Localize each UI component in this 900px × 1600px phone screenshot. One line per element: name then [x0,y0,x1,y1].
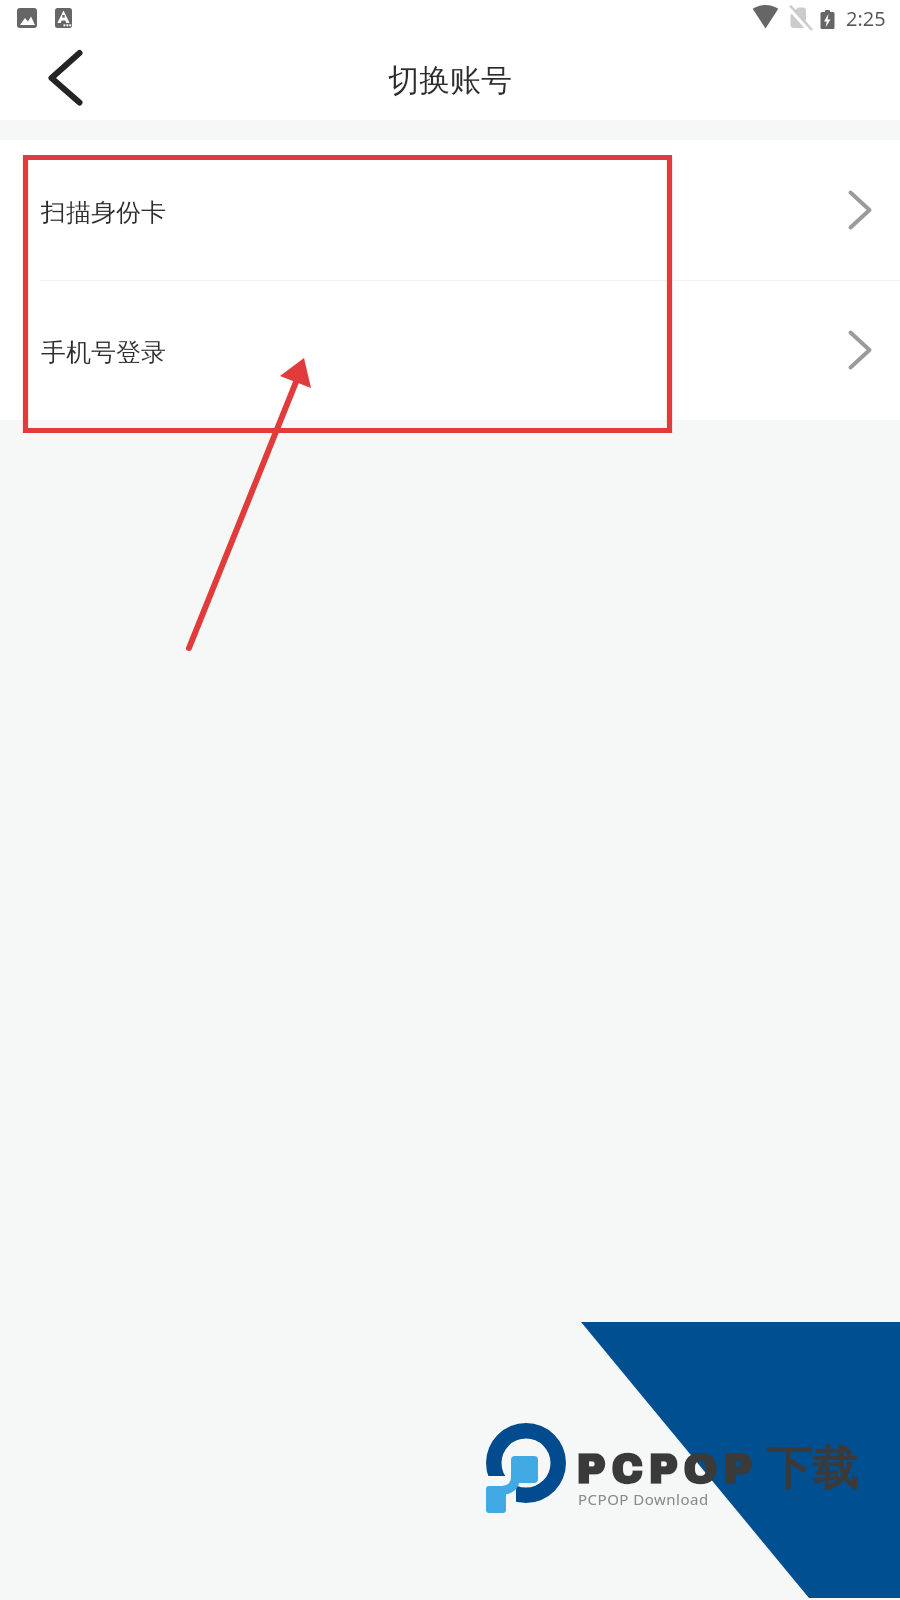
button[interactable]: 手机号登录 [0,280,900,420]
staticText: 切换账号 [388,61,512,100]
button[interactable]: Back [0,40,110,120]
staticText: PCPOP [576,1446,758,1492]
button[interactable]: 扫描身份卡 [0,140,900,280]
staticText: 手机号登录 [41,337,166,368]
staticText: 下载 [766,1440,858,1498]
staticText: PCPOP Download [578,1489,709,1509]
staticText: 2:25 [846,5,886,32]
staticText: 扫描身份卡 [41,197,166,228]
